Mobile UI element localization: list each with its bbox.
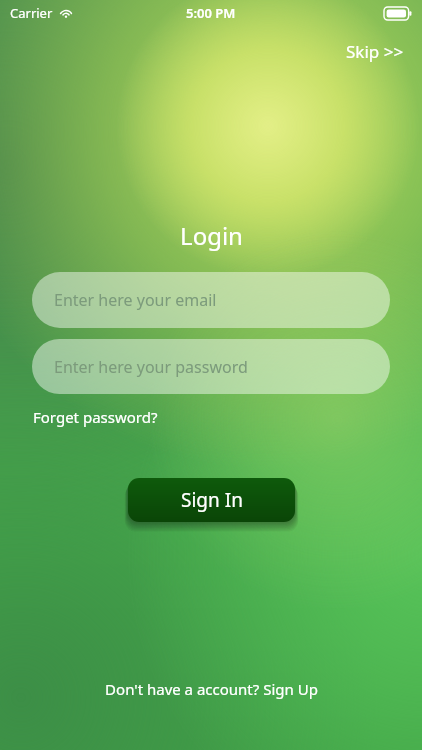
staticText: Login — [180, 219, 243, 252]
button[interactable]: Skip >> — [342, 38, 408, 65]
staticText: 5:00 PM — [186, 4, 236, 22]
button[interactable]: Enter here your email — [32, 272, 390, 328]
staticText: Skip >> — [346, 40, 404, 63]
staticText: Forget password? — [33, 407, 158, 427]
button[interactable]: Sign In — [128, 478, 295, 522]
staticText: Carrier — [10, 4, 53, 22]
staticText: Enter here your email — [54, 289, 217, 311]
staticText: Sign In — [181, 487, 243, 513]
button[interactable]: Enter here your password — [32, 339, 390, 394]
button[interactable]: Forget password? — [29, 404, 162, 430]
staticText: Don't have a account? Sign Up — [105, 679, 318, 699]
staticText: Enter here your password — [54, 356, 248, 378]
button[interactable]: Don't have a account? Sign Up — [99, 675, 324, 703]
